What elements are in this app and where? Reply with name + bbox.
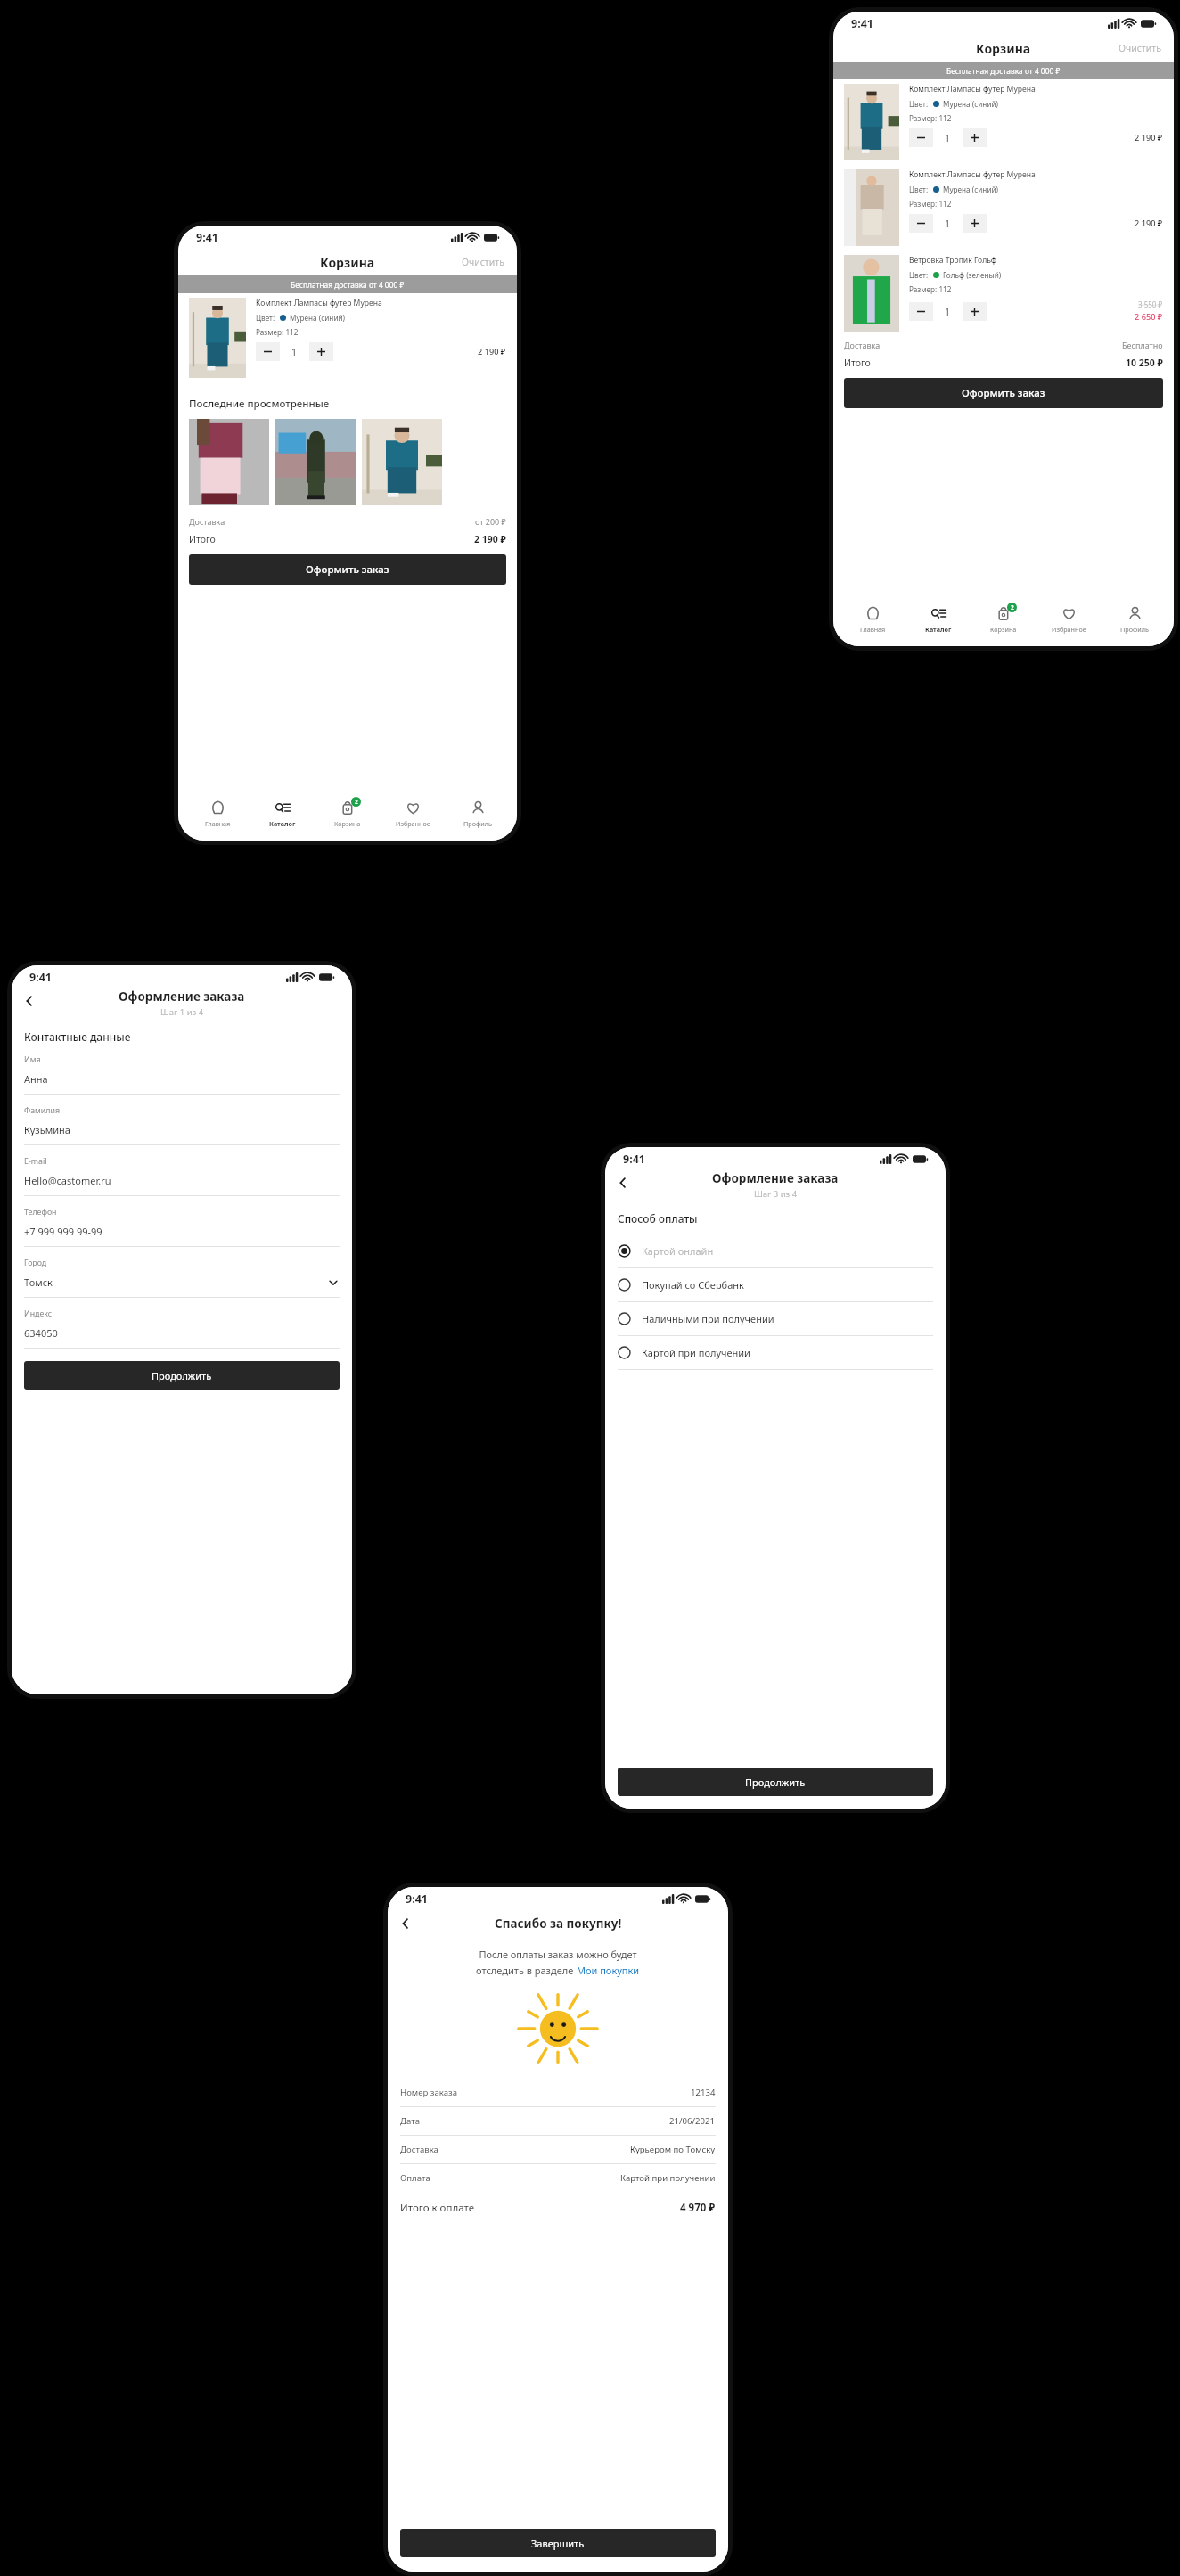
staticText: Корзина <box>334 819 361 828</box>
staticText: Доставка <box>400 2144 438 2155</box>
staticText: Город <box>24 1258 47 1268</box>
staticText: Номер заказа <box>400 2087 458 2098</box>
staticText: Шаг 3 из 4 <box>754 1188 798 1200</box>
staticText: Кузьмина <box>24 1123 70 1136</box>
staticText: Покупай со Сбербанк <box>642 1278 744 1292</box>
staticText: Избранное <box>1052 625 1086 634</box>
button[interactable]: Back <box>612 1172 634 1194</box>
staticText: Комплект Лампасы футер Мурена <box>909 169 1036 180</box>
other: Minus <box>264 348 272 356</box>
button[interactable]: Minus <box>909 128 933 147</box>
other: Back <box>22 994 37 1008</box>
staticText: Корзина <box>976 40 1031 57</box>
staticText: Ветровка Тропик Гольф <box>909 255 997 266</box>
button[interactable]: Наличными при получении <box>605 1302 946 1336</box>
staticText: Каталог <box>925 625 952 634</box>
button[interactable]: Back <box>19 990 40 1012</box>
staticText: Профиль <box>463 819 492 828</box>
button[interactable]: Plus <box>963 214 987 233</box>
button[interactable]: Очистить <box>1106 37 1174 59</box>
button[interactable]: Продолжить <box>24 1361 340 1390</box>
button[interactable]: Оформить заказ <box>189 554 506 585</box>
button[interactable]: Каталог <box>913 603 964 636</box>
staticText: Размер: 112 <box>909 199 952 209</box>
button[interactable]: Покупай со Сбербанк <box>605 1268 946 1302</box>
staticText: Итого к оплате <box>400 2201 474 2215</box>
staticText: Индекс <box>24 1309 53 1319</box>
button[interactable]: Plus <box>309 342 333 361</box>
staticText: Анна <box>24 1072 48 1086</box>
staticText: 1 <box>945 132 951 144</box>
staticText: Курьером по Томску <box>630 2144 716 2155</box>
staticText: Мурена (синий) <box>290 313 346 323</box>
button[interactable]: Главная <box>847 603 898 636</box>
staticText: 2 190 ₽ <box>474 533 506 546</box>
staticText: Размер: 112 <box>909 284 952 294</box>
staticText: Оформить заказ <box>962 386 1045 400</box>
staticText: Очистить <box>462 256 504 268</box>
staticText: Бесплатно <box>1122 340 1163 350</box>
staticText: 10 250 ₽ <box>1126 357 1163 369</box>
button[interactable]: Избранное <box>387 797 438 831</box>
button[interactable]: Главная <box>192 797 243 831</box>
staticText: 12134 <box>691 2087 716 2098</box>
button[interactable]: Minus <box>909 214 933 233</box>
button[interactable]: Картой онлайн <box>605 1235 946 1268</box>
button[interactable]: Профиль <box>1109 603 1160 636</box>
button[interactable]: Продолжить <box>618 1768 933 1796</box>
staticText: 3 550 ₽ <box>1138 299 1163 309</box>
staticText: Hello@castomer.ru <box>24 1174 111 1187</box>
staticText: 9:41 <box>623 1152 645 1167</box>
other: Back <box>616 1176 630 1190</box>
staticText: 9:41 <box>196 230 218 245</box>
button[interactable]: Оформить заказ <box>844 378 1163 408</box>
staticText: Бесплатная доставка от 4 000 ₽ <box>291 280 405 290</box>
staticText: Профиль <box>1120 625 1149 634</box>
button[interactable]: Мои покупки <box>577 1964 640 1977</box>
staticText: 21/06/2021 <box>669 2115 716 2127</box>
button[interactable]: Избранное <box>1043 603 1094 636</box>
button[interactable]: 2 <box>978 603 1029 636</box>
button[interactable]: 2 <box>322 797 373 831</box>
staticText: Доставка <box>189 516 225 527</box>
staticText: Цвет: <box>909 270 929 280</box>
button[interactable]: Профиль <box>452 797 504 831</box>
staticText: Дата <box>400 2115 421 2127</box>
other: Back <box>398 1916 413 1931</box>
button[interactable]: Картой при получении <box>605 1336 946 1370</box>
staticText: Наличными при получении <box>642 1312 774 1325</box>
button[interactable]: Back <box>395 1913 416 1934</box>
button[interactable]: Plus <box>963 302 987 321</box>
staticText: Томск <box>24 1276 53 1289</box>
staticText: 9:41 <box>406 1891 428 1907</box>
staticText: Фамилия <box>24 1105 60 1116</box>
staticText: Мурена (синий) <box>943 185 999 194</box>
staticText: Главная <box>205 819 231 828</box>
staticText: +7 999 999 99-99 <box>24 1225 102 1238</box>
staticText: Корзина <box>320 254 375 271</box>
staticText: 2 650 ₽ <box>1135 311 1163 323</box>
button[interactable]: Завершить <box>400 2529 716 2557</box>
staticText: Шаг 1 из 4 <box>160 1006 204 1018</box>
button[interactable]: Minus <box>909 302 933 321</box>
staticText: Способ оплаты <box>618 1211 698 1226</box>
staticText: 2 190 ₽ <box>1135 132 1163 144</box>
button[interactable]: Каталог <box>257 797 308 831</box>
staticText: Продолжить <box>745 1776 806 1789</box>
staticText: Имя <box>24 1054 41 1065</box>
staticText: Итого <box>189 533 216 546</box>
staticText: 1 <box>291 346 298 358</box>
staticText: 2 <box>1011 603 1014 611</box>
staticText: E-mail <box>24 1156 47 1167</box>
staticText: 1 <box>945 217 951 230</box>
staticText: от 200 ₽ <box>475 516 506 527</box>
button[interactable]: Очистить <box>449 251 517 273</box>
staticText: Доставка <box>844 340 881 350</box>
button[interactable]: Minus <box>256 342 280 361</box>
staticText: Завершить <box>531 2537 585 2550</box>
staticText: Оплата <box>400 2172 430 2184</box>
staticText: Цвет: <box>909 99 929 109</box>
staticText: Размер: 112 <box>909 113 952 123</box>
staticText: 9:41 <box>29 970 52 985</box>
button[interactable]: Plus <box>963 128 987 147</box>
